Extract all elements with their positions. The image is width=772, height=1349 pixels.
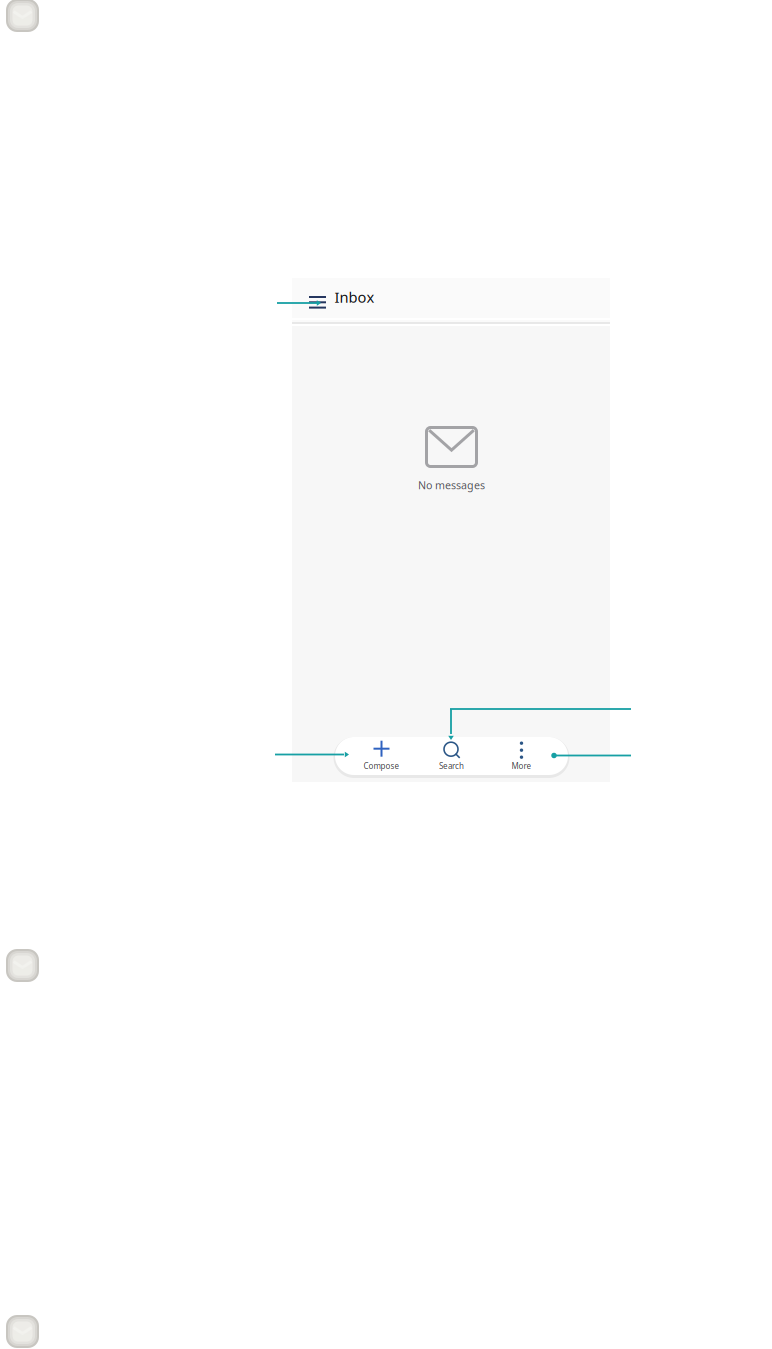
staticText: Compose — [363, 761, 399, 771]
button[interactable]: Compose — [346, 737, 416, 775]
staticText: Inbox — [334, 287, 374, 307]
staticText: More — [511, 761, 531, 771]
button[interactable]: More — [486, 737, 556, 775]
staticText: Search — [439, 761, 464, 771]
button[interactable]: Menu — [302, 287, 333, 318]
button[interactable]: Search — [416, 737, 486, 775]
staticText: No messages — [418, 478, 485, 492]
